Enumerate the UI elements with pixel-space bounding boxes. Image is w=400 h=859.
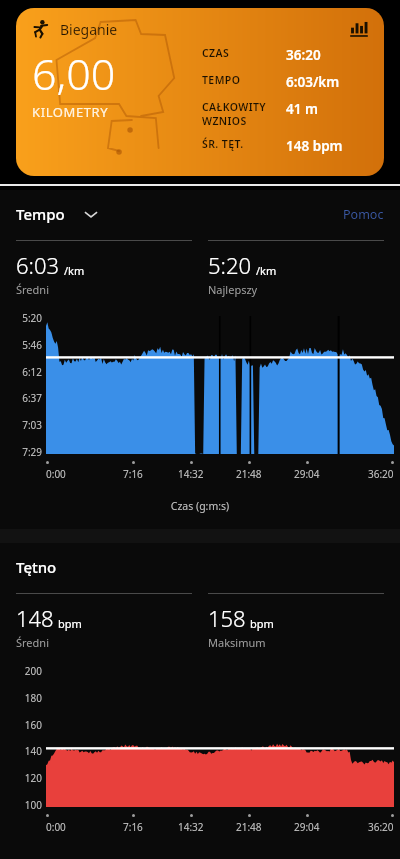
staticText: 21:48 bbox=[236, 820, 262, 834]
staticText: 140 bbox=[24, 744, 42, 758]
staticText: ŚR. TĘT. bbox=[202, 137, 286, 151]
staticText: 5:20 bbox=[22, 311, 42, 325]
staticText: Średni bbox=[16, 282, 49, 297]
staticText: Czas (g:m:s) bbox=[0, 499, 400, 513]
staticText: 0:00 bbox=[46, 467, 66, 481]
staticText: 14:32 bbox=[178, 820, 204, 834]
other: Running bbox=[30, 19, 50, 39]
staticText: 100 bbox=[24, 798, 42, 812]
staticText: 6:37 bbox=[22, 391, 42, 405]
staticText: Bieganie bbox=[60, 20, 118, 39]
staticText: 0:00 bbox=[46, 820, 66, 834]
staticText: bpm bbox=[250, 616, 274, 631]
button[interactable]: Pomoc bbox=[343, 206, 384, 223]
staticText: 5:46 bbox=[22, 338, 42, 352]
staticText: CZAS bbox=[202, 46, 286, 60]
staticText: 36:20 bbox=[368, 467, 394, 481]
staticText: 148 bbox=[16, 603, 54, 633]
button[interactable]: Tętno bbox=[16, 557, 57, 577]
staticText: Średni bbox=[16, 635, 49, 650]
staticText: 36:20 bbox=[286, 46, 321, 64]
staticText: TEMPO bbox=[202, 73, 286, 87]
button[interactable]: Tempo bbox=[16, 204, 99, 224]
staticText: 14:32 bbox=[178, 467, 204, 481]
staticText: 36:20 bbox=[368, 820, 394, 834]
staticText: Tętno bbox=[16, 557, 57, 577]
staticText: 200 bbox=[24, 664, 42, 678]
staticText: KILOMETRY bbox=[32, 103, 109, 121]
staticText: 29:04 bbox=[294, 467, 320, 481]
staticText: /km bbox=[256, 263, 277, 278]
staticText: 6,00 bbox=[32, 44, 116, 103]
staticText: 7:16 bbox=[123, 467, 143, 481]
staticText: 120 bbox=[24, 771, 42, 785]
other: Expand bbox=[83, 206, 99, 222]
staticText: 5:20 bbox=[208, 250, 252, 280]
staticText: Maksimum bbox=[208, 635, 266, 650]
staticText: 6:12 bbox=[22, 365, 42, 379]
staticText: 7:03 bbox=[22, 418, 42, 432]
staticText: 180 bbox=[24, 691, 42, 705]
staticText: 6:03/km bbox=[286, 73, 340, 91]
staticText: 6:03 bbox=[16, 250, 60, 280]
staticText: bpm bbox=[58, 616, 82, 631]
staticText: 29:04 bbox=[294, 820, 320, 834]
button[interactable]: Charts bbox=[348, 18, 370, 40]
staticText: 41 m bbox=[286, 100, 318, 118]
staticText: Najlepszy bbox=[208, 282, 258, 297]
staticText: 7:29 bbox=[22, 445, 42, 459]
staticText: Pomoc bbox=[343, 206, 384, 223]
staticText: 148 bpm bbox=[286, 137, 343, 155]
staticText: 21:48 bbox=[236, 467, 262, 481]
staticText: CAŁKOWITY WZNIOS bbox=[202, 100, 286, 128]
staticText: 158 bbox=[208, 603, 246, 633]
staticText: Tempo bbox=[16, 204, 65, 224]
staticText: /km bbox=[64, 263, 85, 278]
staticText: 160 bbox=[24, 718, 42, 732]
button[interactable]: Running bbox=[16, 8, 384, 176]
staticText: 7:16 bbox=[123, 820, 143, 834]
